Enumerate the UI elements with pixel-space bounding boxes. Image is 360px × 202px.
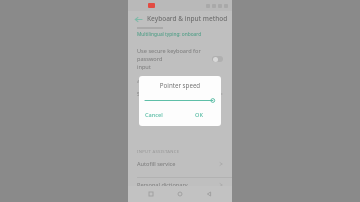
button[interactable]: Use secure keyboard toggle [212, 56, 223, 62]
button[interactable]: Back [203, 188, 215, 200]
staticText: INPUT ASSISTANCE [137, 149, 180, 155]
staticText: Cancel [145, 111, 163, 119]
button[interactable]: Pointer speed slider [145, 97, 215, 104]
staticText: Sboard [137, 90, 219, 98]
button[interactable]: Autofill service [128, 157, 232, 171]
button[interactable]: Back [128, 11, 232, 26]
staticText: AVAILABLE KEYBOARDS [137, 79, 189, 85]
button[interactable]: Personal dictionary [128, 178, 232, 192]
button[interactable]: OK [180, 109, 215, 121]
staticText: Pointer speed [137, 194, 219, 202]
staticText: OK [195, 111, 203, 119]
staticText: Autofill service [137, 160, 219, 168]
staticText: Multilingual typing: onboard [137, 31, 202, 38]
button[interactable]: Cancel [145, 109, 180, 121]
staticText: Personal dictionary [137, 181, 219, 189]
staticText: Use secure keyboard for password input [137, 47, 208, 71]
button[interactable]: Pointer speed [128, 193, 232, 202]
staticText: Keyboard & input method [147, 14, 228, 23]
button[interactable]: Recents [145, 188, 157, 200]
button[interactable]: Back [133, 14, 143, 24]
button[interactable]: Sboard [128, 87, 232, 101]
staticText: Pointer speed [145, 81, 215, 89]
button[interactable]: Home [174, 188, 186, 200]
button[interactable]: Multilingual typing: onboard [128, 26, 232, 38]
button[interactable]: Use secure keyboard for password input [128, 44, 232, 74]
